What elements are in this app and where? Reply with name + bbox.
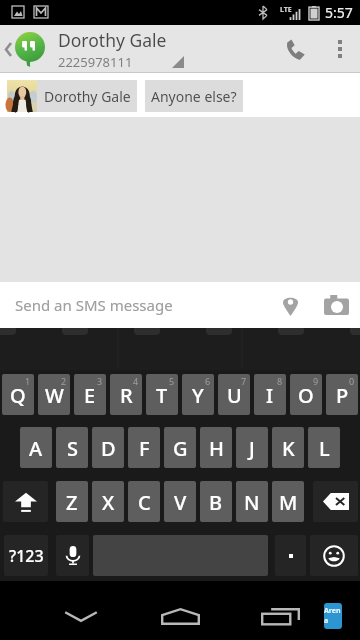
staticText: E bbox=[84, 382, 96, 409]
button[interactable]: D bbox=[92, 427, 124, 468]
staticText: H bbox=[209, 435, 224, 462]
button[interactable]: V bbox=[164, 481, 196, 522]
staticText: Send an SMS message bbox=[15, 295, 173, 315]
staticText: T bbox=[156, 382, 168, 409]
staticText: 6 bbox=[205, 375, 211, 387]
staticText: Y bbox=[192, 382, 204, 409]
button[interactable]: Symbols bbox=[4, 535, 48, 576]
staticText: G bbox=[173, 435, 188, 462]
staticText: S bbox=[67, 435, 78, 462]
staticText: 1 bbox=[25, 375, 31, 387]
staticText: L bbox=[319, 435, 330, 462]
button[interactable]: E bbox=[74, 374, 106, 415]
staticText: Z bbox=[66, 489, 78, 516]
staticText: 9 bbox=[313, 375, 319, 387]
staticText: ?123 bbox=[9, 545, 44, 567]
button[interactable]: L bbox=[308, 427, 340, 468]
button[interactable]: Q bbox=[2, 374, 34, 415]
button[interactable]: Back bbox=[0, 25, 58, 73]
staticText: N bbox=[244, 489, 260, 516]
button[interactable]: R bbox=[110, 374, 142, 415]
staticText: 0 bbox=[349, 375, 355, 387]
button[interactable]: M bbox=[272, 481, 304, 522]
staticText: P bbox=[336, 382, 349, 409]
staticText: K bbox=[282, 435, 295, 462]
button[interactable]: Period bbox=[275, 535, 306, 576]
button[interactable]: C bbox=[128, 481, 160, 522]
staticText: 7 bbox=[241, 375, 247, 387]
button[interactable]: O bbox=[290, 374, 322, 415]
button[interactable]: Dorothy Gale bbox=[7, 80, 137, 112]
button[interactable]: U bbox=[218, 374, 250, 415]
button[interactable]: Emoji bbox=[310, 535, 358, 576]
button[interactable]: H bbox=[200, 427, 232, 468]
staticText: C bbox=[138, 489, 151, 516]
staticText: B bbox=[209, 489, 223, 516]
staticText: Q bbox=[10, 382, 26, 409]
button[interactable]: X bbox=[92, 481, 124, 522]
staticText: Anyone else? bbox=[151, 87, 237, 106]
staticText: Dorothy Gale bbox=[44, 87, 131, 106]
staticText: 2225978111 bbox=[58, 53, 133, 71]
button[interactable]: Call bbox=[272, 25, 320, 73]
button[interactable]: B bbox=[200, 481, 232, 522]
staticText: F bbox=[139, 435, 150, 462]
button[interactable]: Anyone else? bbox=[145, 80, 243, 112]
button[interactable]: W bbox=[38, 374, 70, 415]
button[interactable]: Hide keyboard bbox=[44, 581, 117, 640]
staticText: J bbox=[249, 435, 255, 462]
button[interactable]: Y bbox=[182, 374, 214, 415]
staticText: O bbox=[298, 382, 314, 409]
button[interactable]: N bbox=[236, 481, 268, 522]
button[interactable]: I bbox=[254, 374, 286, 415]
staticText: 5 bbox=[169, 375, 175, 387]
button[interactable]: P bbox=[326, 374, 358, 415]
staticText: Arena bbox=[324, 606, 342, 626]
button[interactable]: J bbox=[236, 427, 268, 468]
staticText: I bbox=[266, 382, 274, 409]
button[interactable]: Delete bbox=[313, 481, 358, 522]
staticText: U bbox=[227, 382, 242, 409]
staticText: M bbox=[279, 489, 298, 516]
button[interactable]: Take photo bbox=[312, 282, 360, 328]
staticText: LTE bbox=[280, 5, 292, 15]
staticText: D bbox=[101, 435, 116, 462]
staticText: W bbox=[45, 382, 64, 409]
button[interactable]: Send location bbox=[268, 282, 312, 328]
button[interactable]: A bbox=[20, 427, 52, 468]
staticText: 3 bbox=[97, 375, 103, 387]
button[interactable]: Home bbox=[144, 581, 217, 640]
button[interactable]: T bbox=[146, 374, 178, 415]
button[interactable]: Z bbox=[56, 481, 88, 522]
staticText: 5:57 bbox=[325, 3, 353, 22]
button[interactable]: F bbox=[128, 427, 160, 468]
button[interactable]: S bbox=[56, 427, 88, 468]
button[interactable]: More options bbox=[320, 25, 360, 73]
staticText: Dorothy Gale bbox=[58, 28, 167, 52]
button[interactable]: Shift bbox=[3, 481, 48, 522]
staticText: R bbox=[120, 382, 133, 409]
button[interactable]: Voice input bbox=[56, 535, 89, 576]
button[interactable]: G bbox=[164, 427, 196, 468]
staticText: V bbox=[174, 489, 187, 516]
button[interactable]: Recent apps bbox=[244, 581, 317, 640]
button[interactable]: K bbox=[272, 427, 304, 468]
staticText: 8 bbox=[277, 375, 283, 387]
staticText: 2 bbox=[61, 375, 67, 387]
staticText: A bbox=[29, 435, 43, 462]
staticText: 4 bbox=[133, 375, 139, 387]
staticText: X bbox=[102, 489, 115, 516]
